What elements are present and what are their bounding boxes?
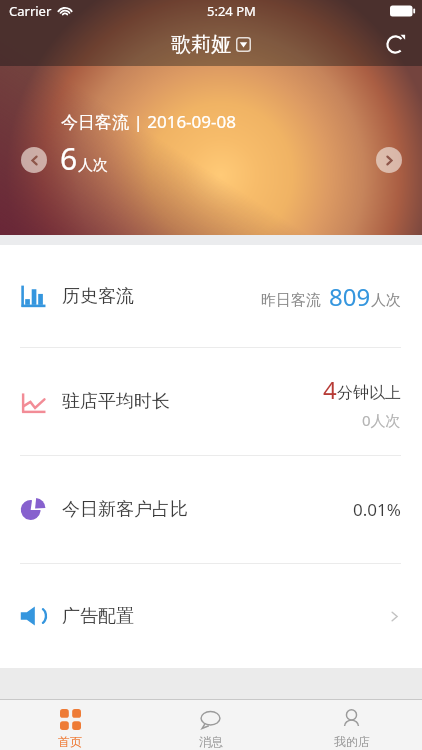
button[interactable]: Refresh [378,27,412,61]
staticText: 人次 [78,156,108,175]
button[interactable]: Next day [376,147,402,173]
staticText: 歌莉娅 [171,32,231,57]
button[interactable]: 驻店平均时长 [0,348,422,455]
staticText: 我的店 [334,734,370,749]
button[interactable]: 消息 [140,700,281,750]
staticText: 6 [60,138,78,179]
button[interactable]: 歌莉娅 [171,32,251,57]
staticText: 昨日客流 [261,291,321,310]
staticText: Carrier [9,2,52,20]
button[interactable]: 历史客流 [0,245,422,347]
staticText: 809 [329,280,371,313]
staticText: 0.01% [353,498,401,521]
staticText: 消息 [199,734,223,749]
staticText: 首页 [58,734,82,749]
staticText: 4 [323,373,337,406]
button[interactable]: 我的店 [281,700,422,750]
staticText: 今日客流 | 2016-09-08 [61,110,236,133]
button[interactable]: 广告配置 [0,564,422,668]
button[interactable]: 首页 [0,700,140,750]
staticText: 广告配置 [62,605,134,628]
staticText: 分钟以上 [337,383,401,403]
staticText: 驻店平均时长 [62,390,170,413]
staticText: 5:24 PM [207,2,256,20]
staticText: 历史客流 [62,285,134,308]
button[interactable]: 今日新客户占比 [0,456,422,563]
staticText: 今日新客户占比 [62,498,188,521]
button[interactable]: Previous day [21,147,47,173]
staticText: 人次 [371,291,401,310]
staticText: 0人次 [362,410,401,430]
